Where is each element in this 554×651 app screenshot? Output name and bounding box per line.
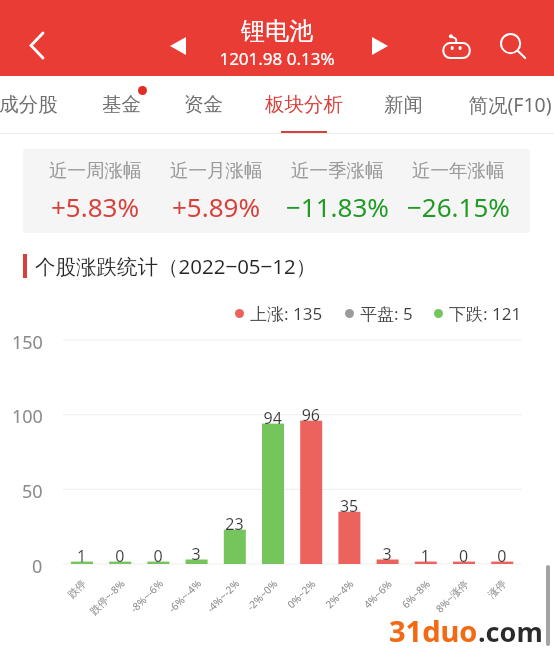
button[interactable]: AI assistant	[422, 8, 482, 68]
staticText: 成分股	[0, 92, 58, 117]
staticText: 31duo	[389, 611, 478, 650]
staticText: 锂电池	[241, 16, 313, 46]
button[interactable]: 简况(F10)	[462, 76, 554, 133]
button[interactable]: Previous sector	[155, 22, 200, 67]
staticText: +5.89%	[172, 189, 261, 224]
button[interactable]: 基金	[94, 76, 148, 133]
button[interactable]: 资金	[176, 76, 230, 133]
button[interactable]: 成分股	[0, 76, 64, 133]
button[interactable]: Back	[7, 0, 67, 76]
staticText: 近一周涨幅	[49, 159, 142, 182]
staticText: 个股涨跌统计（2022‒05‒12）	[35, 252, 317, 280]
staticText: 资金	[184, 92, 223, 117]
staticText: 新闻	[384, 92, 423, 117]
staticText: 近一年涨幅	[412, 159, 505, 182]
button[interactable]: Next sector	[357, 22, 402, 67]
staticText: +5.83%	[51, 189, 140, 224]
staticText: 上涨: 135	[250, 302, 323, 325]
button[interactable]: 新闻	[376, 76, 430, 133]
staticText: 板块分析	[265, 92, 343, 117]
staticText: .com	[478, 613, 543, 650]
staticText: 下跌: 121	[449, 302, 522, 325]
staticText: 简况(F10)	[468, 91, 552, 118]
button[interactable]: Search	[482, 8, 540, 68]
staticText: 基金	[102, 92, 141, 117]
staticText: 1201.98 0.13%	[219, 47, 335, 70]
button[interactable]: 板块分析	[259, 76, 349, 133]
staticText: 近一月涨幅	[170, 159, 263, 182]
staticText: 平盘: 5	[360, 302, 413, 325]
staticText: 近一季涨幅	[291, 159, 384, 182]
staticText: −11.83%	[286, 189, 389, 224]
staticText: −26.15%	[407, 189, 510, 224]
